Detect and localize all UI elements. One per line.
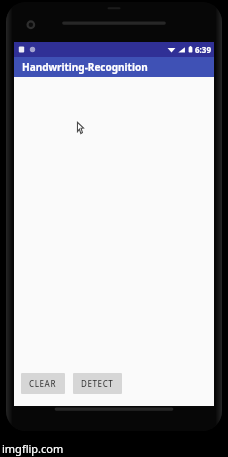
button[interactable]: CLEAR (21, 373, 65, 394)
staticText: CLEAR (29, 378, 57, 389)
staticText: Handwriting-Recognition (22, 60, 148, 74)
staticText: 6:39 (195, 44, 211, 55)
staticText: imgflip.com (2, 441, 64, 456)
staticText: DETECT (81, 378, 114, 389)
button[interactable]: Drawing canvas (14, 77, 214, 366)
button[interactable]: DETECT (73, 373, 122, 394)
